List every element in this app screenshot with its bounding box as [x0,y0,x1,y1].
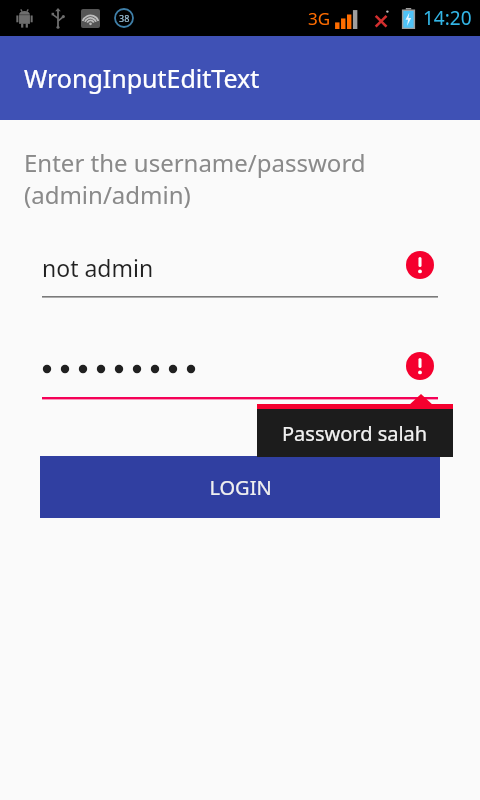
staticText: Password salah [282,420,428,447]
staticText: LOGIN [209,474,272,501]
staticText: WrongInputEditText [24,61,260,95]
button[interactable]: LOGIN [40,456,440,518]
staticText: Enter the username/password (admin/admin… [24,146,366,211]
staticText: 38 [119,12,130,24]
staticText: 3G [308,7,331,30]
button[interactable]: not admin [0,236,480,298]
staticText: not admin [42,252,154,283]
staticText: 14:20 [423,5,472,31]
button[interactable] [0,338,480,400]
